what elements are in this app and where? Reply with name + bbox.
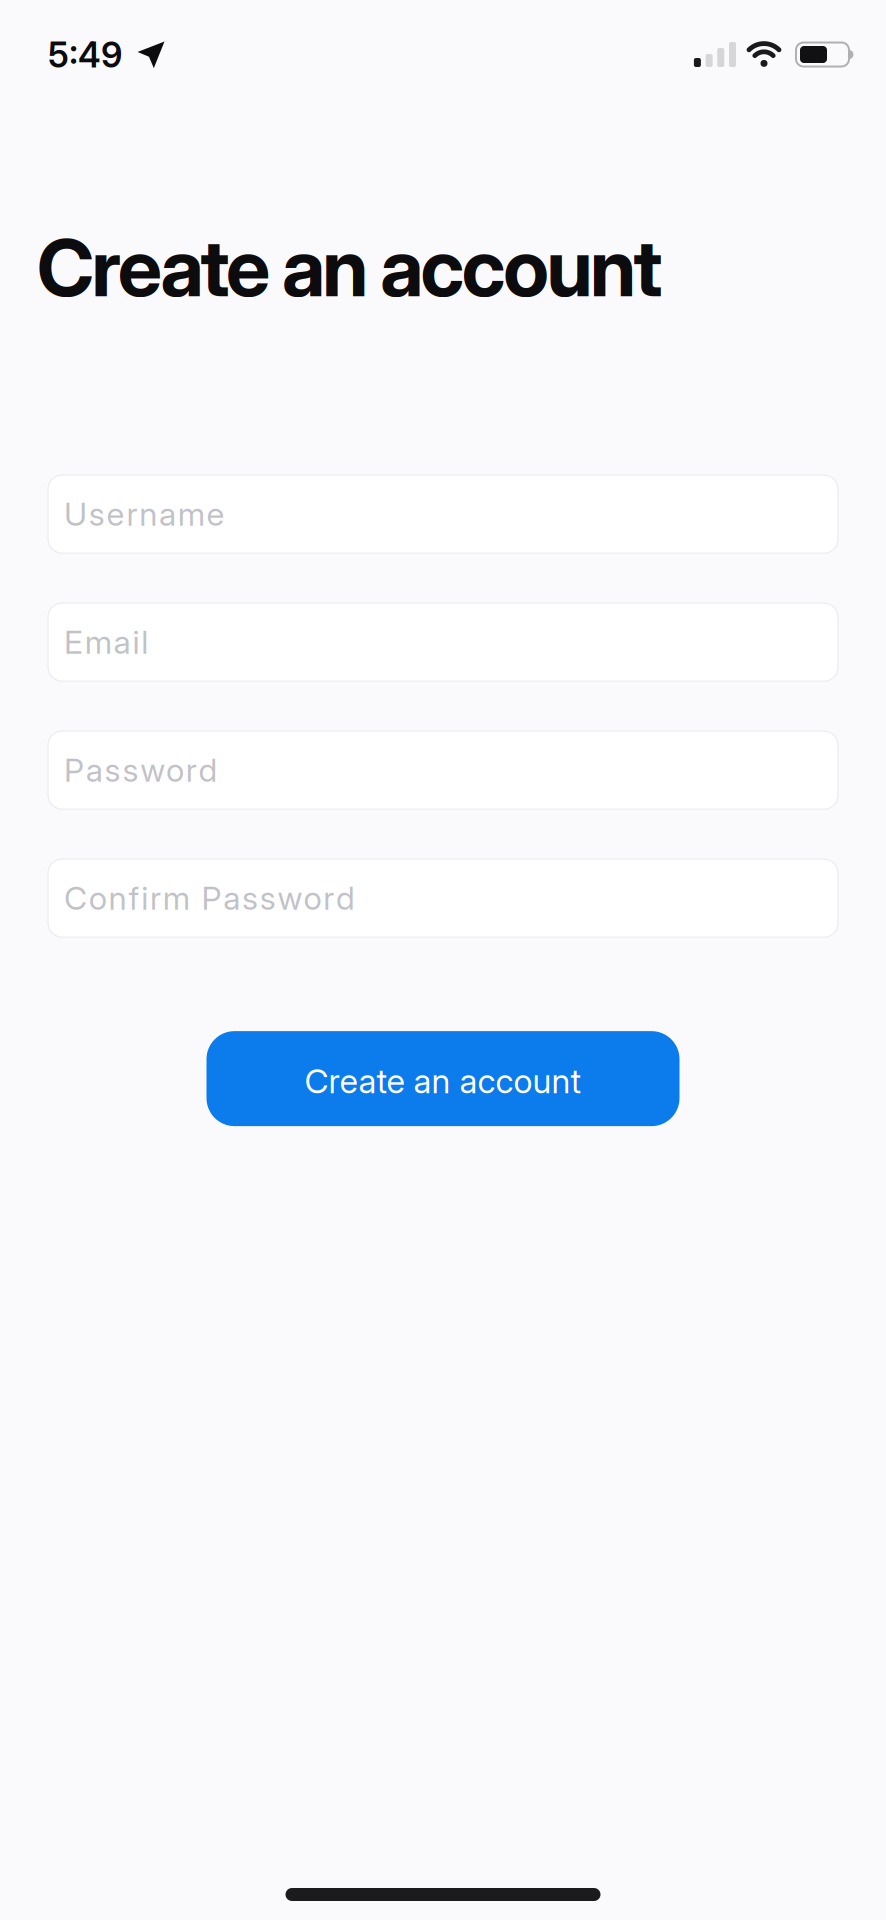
staticText: 5:49 (48, 34, 122, 76)
button[interactable]: Create an account (206, 1031, 679, 1126)
staticText: Create an account (37, 220, 662, 315)
staticText: Email (64, 623, 148, 661)
staticText: Confirm Password (64, 879, 355, 917)
staticText: Create an account (304, 1061, 581, 1101)
button[interactable]: Email (48, 603, 838, 681)
staticText: Password (64, 751, 218, 789)
button[interactable]: Confirm Password (48, 859, 838, 937)
staticText: Username (64, 495, 225, 533)
button[interactable]: Password (48, 731, 838, 809)
button[interactable]: Username (48, 475, 838, 553)
